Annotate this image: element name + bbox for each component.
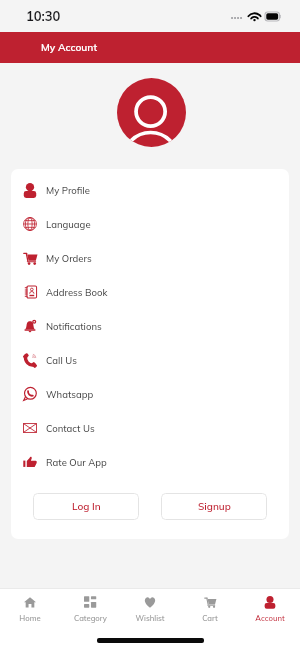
button[interactable]: Whatsapp [11, 377, 289, 411]
staticText: My Orders [46, 252, 92, 264]
staticText: Cart [202, 613, 218, 623]
button[interactable]: Language [11, 207, 289, 241]
button[interactable]: Rate Our App [11, 445, 289, 479]
button[interactable]: Log In [33, 493, 139, 520]
staticText: Category [74, 613, 107, 623]
button[interactable]: Wishlist [120, 593, 180, 623]
staticText: Contact Us [46, 422, 95, 434]
button[interactable]: Category [60, 593, 120, 623]
staticText: Home [19, 613, 41, 623]
button[interactable]: Cart [180, 593, 240, 623]
button[interactable]: Contact Us [11, 411, 289, 445]
staticText: Log In [72, 500, 101, 513]
button[interactable]: Account [240, 593, 300, 623]
staticText: Notifications [46, 320, 102, 332]
staticText: My Account [41, 41, 98, 54]
staticText: My Profile [46, 184, 90, 196]
staticText: Call Us [46, 354, 77, 366]
button[interactable]: Signup [161, 493, 267, 520]
staticText: Whatsapp [46, 388, 94, 400]
button[interactable]: Notifications [11, 309, 289, 343]
staticText: Signup [198, 500, 231, 513]
button[interactable]: My Orders [11, 241, 289, 275]
button[interactable]: Home [0, 593, 60, 623]
button[interactable]: My Profile [11, 173, 289, 207]
staticText: Wishlist [135, 613, 165, 623]
staticText: Account [255, 613, 285, 623]
staticText: 10:30 [26, 8, 61, 24]
button[interactable]: Address Book [11, 275, 289, 309]
button[interactable]: Call Us [11, 343, 289, 377]
staticText: Language [46, 218, 91, 230]
staticText: Address Book [46, 286, 108, 298]
staticText: Rate Our App [46, 456, 107, 468]
